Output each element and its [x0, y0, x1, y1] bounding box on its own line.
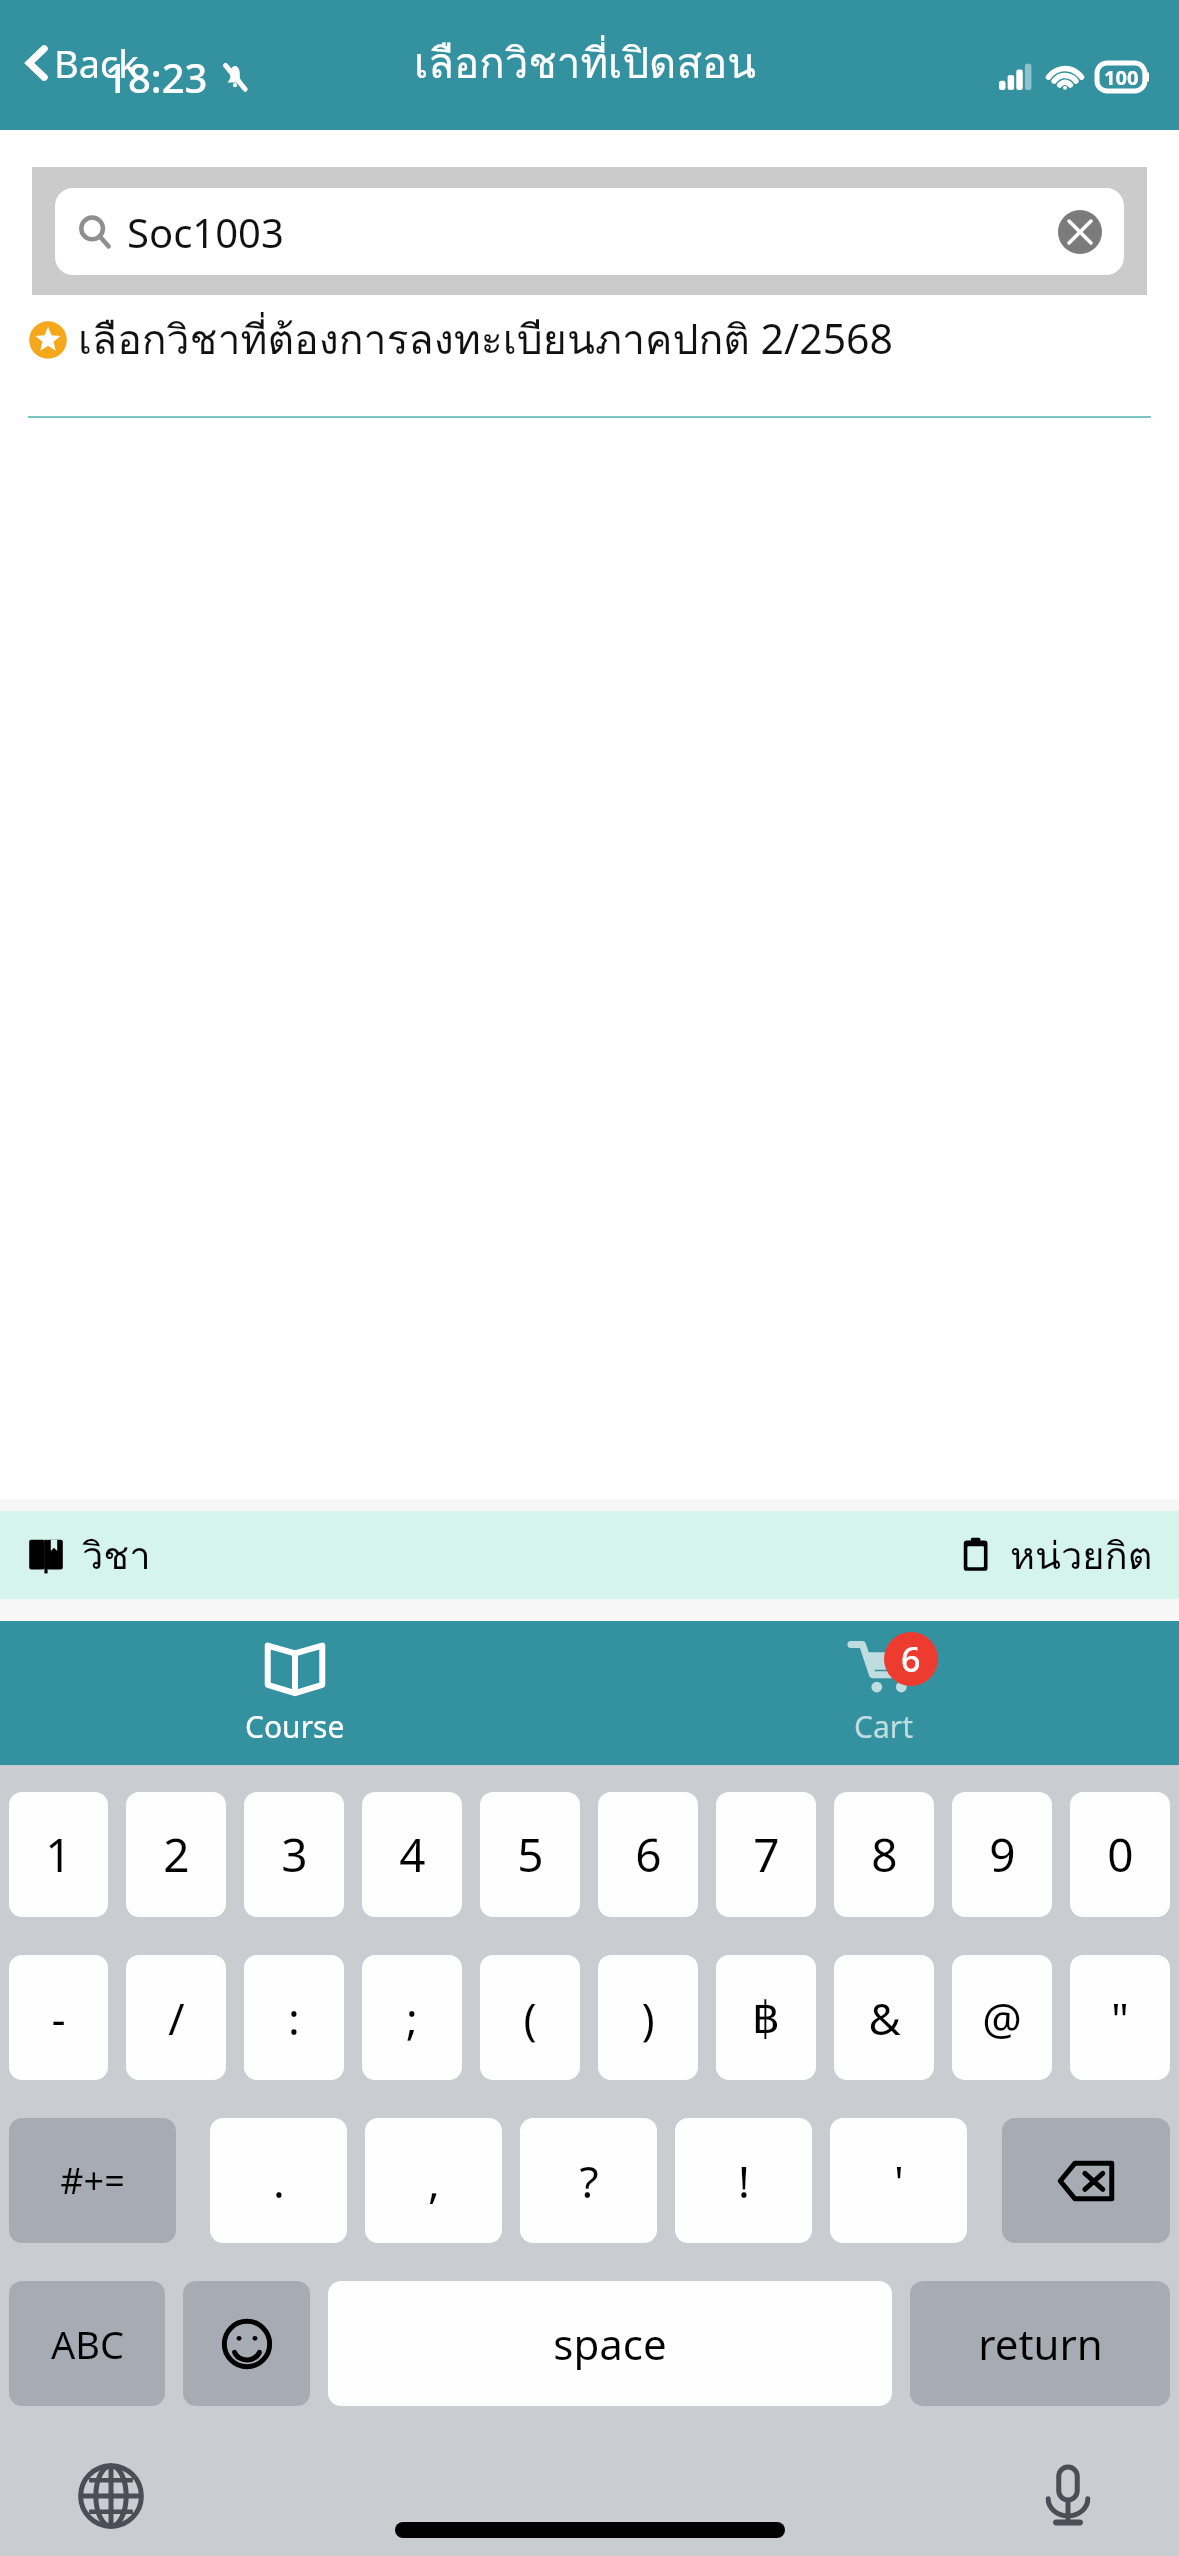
other: Emoji [183, 2281, 310, 2406]
button[interactable]: " [1070, 1955, 1170, 2080]
staticText: . [273, 2151, 285, 2211]
staticText: ฿ [752, 1992, 780, 2043]
button[interactable]: 6 [598, 1792, 698, 1917]
staticText: 9 [989, 1823, 1016, 1886]
staticText: return [978, 2315, 1103, 2372]
staticText: : [288, 1988, 300, 2048]
button[interactable]: 4 [362, 1792, 462, 1917]
button[interactable]: Dictation [1035, 2463, 1101, 2529]
button[interactable]: 6 [589, 1621, 1179, 1765]
button[interactable]: Course [0, 1621, 589, 1765]
staticText: Course [245, 1706, 345, 1747]
button[interactable]: Emoji [183, 2281, 310, 2406]
staticText: 7 [753, 1823, 780, 1886]
staticText: หน่วยกิต [1010, 1525, 1153, 1585]
button[interactable]: / [126, 1955, 226, 2080]
button[interactable]: ฿ [716, 1955, 816, 2080]
staticText: 18:23 [105, 50, 208, 104]
staticText: Back [54, 37, 139, 89]
staticText: ABC [51, 2318, 124, 2370]
button[interactable]: return [910, 2281, 1170, 2406]
button[interactable]: @ [952, 1955, 1052, 2080]
button[interactable]: , [365, 2118, 502, 2243]
staticText: 0 [1107, 1823, 1134, 1886]
staticText: @ [982, 1988, 1022, 2048]
button[interactable]: Backspace [1002, 2118, 1170, 2243]
staticText: & [868, 1988, 901, 2048]
button[interactable]: ! [675, 2118, 812, 2243]
button[interactable]: ' [830, 2118, 967, 2243]
staticText: #+= [60, 2156, 125, 2205]
staticText: 2 [163, 1823, 190, 1886]
button[interactable]: ; [362, 1955, 462, 2080]
staticText: วิชา [82, 1525, 151, 1585]
staticText: 100 [1104, 64, 1139, 91]
staticText: ; [406, 1988, 418, 2048]
button[interactable]: 1 [9, 1792, 108, 1917]
button[interactable]: space [328, 2281, 892, 2406]
button[interactable]: 7 [716, 1792, 816, 1917]
staticText: " [1111, 1988, 1129, 2048]
staticText: Soc1003 [127, 205, 284, 259]
button[interactable]: . [210, 2118, 347, 2243]
button[interactable]: Change keyboard language [78, 2463, 144, 2529]
button[interactable]: 8 [834, 1792, 934, 1917]
button[interactable]: : [244, 1955, 344, 2080]
button[interactable]: ABC [9, 2281, 165, 2406]
staticText: ( [523, 1988, 537, 2048]
button[interactable]: 0 [1070, 1792, 1170, 1917]
button[interactable]: Back [18, 31, 145, 95]
staticText: - [51, 1988, 66, 2048]
button[interactable]: 5 [480, 1792, 580, 1917]
staticText: เลือกวิชาที่ต้องการลงทะเบียนภาคปกติ 2/25… [78, 307, 894, 372]
button[interactable]: ? [520, 2118, 657, 2243]
staticText: 8 [871, 1823, 898, 1886]
staticText: , [428, 2151, 440, 2211]
staticText: 4 [399, 1823, 426, 1886]
button[interactable]: ) [598, 1955, 698, 2080]
staticText: 1 [45, 1823, 72, 1886]
staticText: 5 [517, 1823, 544, 1886]
button[interactable]: & [834, 1955, 934, 2080]
button[interactable]: 9 [952, 1792, 1052, 1917]
staticText: space [553, 2315, 667, 2372]
staticText: Cart [854, 1706, 914, 1747]
button[interactable]: Soc1003 [55, 188, 1124, 275]
staticText: 3 [281, 1823, 308, 1886]
button[interactable]: Clear text [1058, 210, 1102, 254]
staticText: 6 [901, 1636, 921, 1682]
other: Backspace [1002, 2118, 1170, 2243]
button[interactable]: 2 [126, 1792, 226, 1917]
staticText: 6 [635, 1823, 662, 1886]
staticText: ! [738, 2151, 750, 2211]
button[interactable]: - [9, 1955, 108, 2080]
button[interactable]: #+= [9, 2118, 176, 2243]
staticText: ? [579, 2151, 599, 2211]
button[interactable]: ( [480, 1955, 580, 2080]
staticText: ) [641, 1988, 655, 2048]
staticText: ' [894, 2151, 904, 2211]
button[interactable]: 3 [244, 1792, 344, 1917]
staticText: / [168, 1988, 185, 2048]
staticText: เลือกวิชาที่เปิดสอน [414, 30, 756, 97]
